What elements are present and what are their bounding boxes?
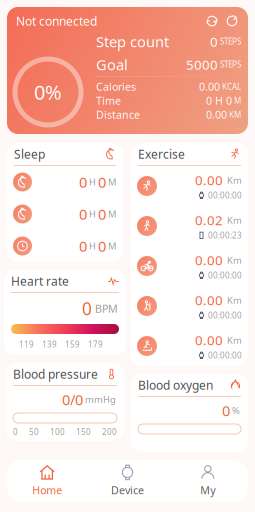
staticText: % xyxy=(230,404,240,417)
staticText: 119 xyxy=(19,339,34,350)
button[interactable]: Sync xyxy=(202,11,222,31)
staticText: M xyxy=(106,240,116,252)
staticText: 100 xyxy=(50,427,65,437)
staticText: 0 xyxy=(82,297,92,320)
staticText: Km xyxy=(223,214,242,226)
staticText: 200 xyxy=(102,427,117,437)
staticText: BPM xyxy=(92,301,118,316)
staticText: 00:00:00 xyxy=(208,310,242,321)
staticText: 0.00 xyxy=(206,108,227,122)
staticText: 0.00 xyxy=(195,171,223,189)
staticText: 0 xyxy=(13,427,18,437)
staticText: Km xyxy=(223,334,242,346)
staticText: KM xyxy=(227,109,241,120)
staticText: 0.00 xyxy=(195,291,223,309)
staticText: 0/0 xyxy=(62,390,83,409)
staticText: 0 xyxy=(222,401,230,420)
staticText: 179 xyxy=(88,339,103,350)
staticText: Calories xyxy=(96,80,136,94)
button[interactable]: Device xyxy=(87,460,168,502)
staticText: 00:00:00 xyxy=(208,350,242,361)
staticText: KCAL xyxy=(220,81,241,92)
staticText: 0.00 xyxy=(195,331,223,349)
staticText: Exercise xyxy=(138,146,185,162)
staticText: Time xyxy=(96,94,121,108)
staticText: 139 xyxy=(42,339,57,350)
staticText: M xyxy=(106,176,116,188)
staticText: 0% xyxy=(34,79,62,105)
staticText: 159 xyxy=(65,339,80,350)
staticText: H xyxy=(87,176,98,188)
staticText: Blood pressure xyxy=(13,366,98,382)
staticText: 00:00:23 xyxy=(208,230,242,241)
staticText: 0.02 xyxy=(195,211,223,229)
staticText: STEPS xyxy=(218,36,241,47)
staticText: Km xyxy=(223,174,242,186)
staticText: M xyxy=(232,95,241,106)
staticText: Heart rate xyxy=(11,273,69,289)
staticText: Km xyxy=(223,294,242,306)
button[interactable]: Home xyxy=(7,460,87,502)
button[interactable]: Refresh xyxy=(222,11,242,31)
staticText: 0 xyxy=(98,172,106,192)
staticText: STEPS xyxy=(218,59,241,70)
staticText: My xyxy=(200,483,215,497)
staticText: 00:00:00 xyxy=(208,190,242,201)
staticText: 150 xyxy=(76,427,91,437)
staticText: mmHg xyxy=(83,393,116,406)
staticText: 0.00 xyxy=(195,251,223,269)
staticText: M xyxy=(106,208,116,220)
staticText: Distance xyxy=(96,108,140,122)
staticText: 5000 xyxy=(186,56,218,73)
staticText: Sleep xyxy=(14,146,45,162)
staticText: 0 xyxy=(98,236,106,256)
staticText: H xyxy=(87,240,98,252)
staticText: 0 xyxy=(98,204,106,224)
staticText: 0 H 0 xyxy=(206,94,232,108)
staticText: 0.00 xyxy=(199,80,220,94)
staticText: 0 xyxy=(79,204,87,224)
staticText: H xyxy=(87,208,98,220)
staticText: Device xyxy=(111,483,144,497)
staticText: 50 xyxy=(29,427,39,437)
staticText: 0 xyxy=(210,33,218,50)
staticText: Blood oxygen xyxy=(138,377,213,393)
staticText: 0 xyxy=(79,236,87,256)
staticText: 00:00:00 xyxy=(208,270,242,281)
staticText: Step count xyxy=(96,32,169,51)
staticText: Goal xyxy=(96,55,128,74)
staticText: Km xyxy=(223,254,242,266)
staticText: Home xyxy=(32,483,62,497)
staticText: 0 xyxy=(79,172,87,192)
staticText: Not connected xyxy=(16,13,97,29)
button[interactable]: My xyxy=(168,460,248,502)
